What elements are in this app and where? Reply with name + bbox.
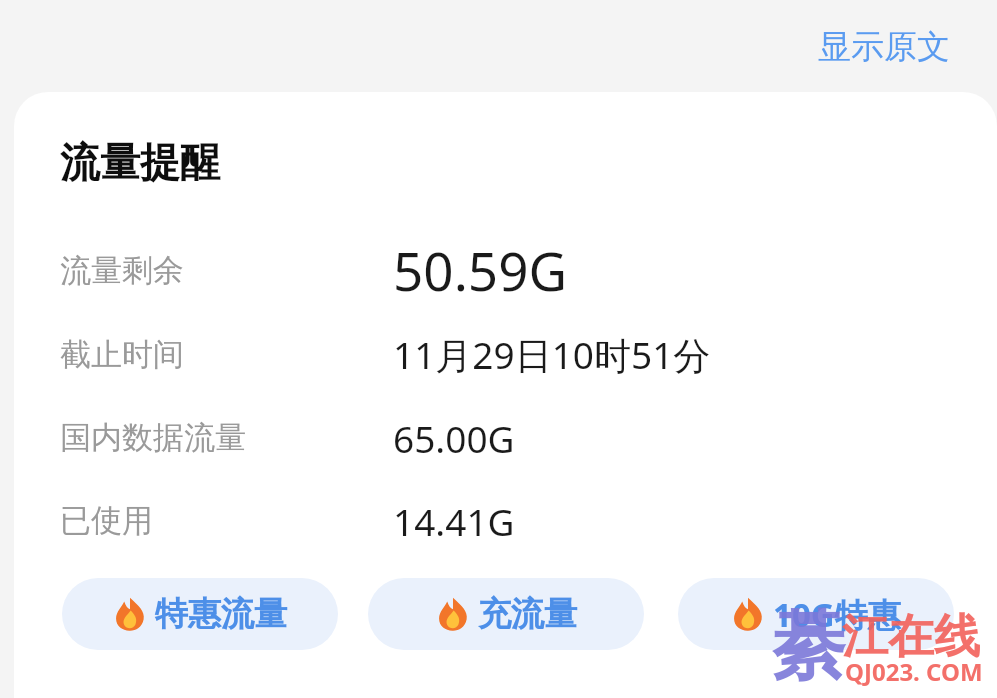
staticText: 14.41G [393, 496, 515, 546]
staticText: 10G特惠 [773, 592, 901, 637]
staticText: 流量剩余 [60, 251, 184, 290]
button[interactable]: 优惠 [62, 578, 338, 650]
staticText: 特惠流量 [155, 593, 287, 635]
staticText: 截止时间 [60, 335, 184, 374]
staticText: 充流量 [478, 593, 577, 635]
staticText: 国内数据流量 [60, 418, 246, 457]
staticText: 显示原文 [818, 26, 950, 68]
staticText: 流量提醒 [60, 137, 220, 187]
other: 优惠 [113, 597, 147, 631]
staticText: 65.00G [393, 413, 515, 463]
staticText: 綦 [772, 600, 846, 693]
button[interactable]: 显示原文 [818, 26, 950, 68]
staticText: 50.59G [393, 234, 568, 306]
staticText: 江在线 [842, 608, 980, 666]
button[interactable]: 优惠 [368, 578, 644, 650]
staticText: 已使用 [60, 501, 153, 540]
other: 优惠 [731, 597, 765, 631]
other: 优惠 [436, 597, 470, 631]
button[interactable]: 优惠 [678, 578, 954, 650]
staticText: 11月29日10时51分 [393, 329, 711, 380]
staticText: QJ023. COM [845, 655, 983, 688]
